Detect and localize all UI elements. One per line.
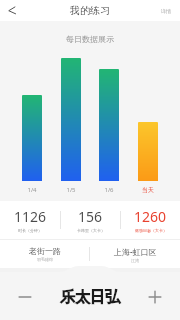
staticText: 我的练习: [70, 4, 110, 17]
staticText: 乐太日弘: [60, 288, 120, 307]
staticText: 卡路里（大卡）: [77, 228, 105, 233]
staticText: 上海-虹口区: [114, 246, 157, 257]
staticText: 1260: [134, 207, 167, 226]
staticText: 老街一路: [29, 246, 61, 256]
staticText: 1/6: [104, 186, 114, 194]
button[interactable]: Increase: [130, 274, 180, 320]
button[interactable]: 156: [61, 201, 120, 239]
staticText: 时长（分钟）: [18, 228, 42, 233]
button[interactable]: 1260: [121, 201, 180, 239]
staticText: 详情: [161, 8, 171, 14]
button[interactable]: 1/4: [22, 52, 42, 194]
staticText: 每日数据展示: [66, 34, 114, 44]
staticText: 156: [78, 207, 103, 226]
button[interactable]: 1/5: [61, 52, 81, 194]
button[interactable]: Decrease: [0, 274, 50, 320]
button[interactable]: 当天: [138, 52, 158, 194]
button[interactable]: 1/6: [99, 52, 119, 194]
button[interactable]: Back: [0, 0, 24, 21]
staticText: 1126: [14, 207, 47, 226]
button[interactable]: 详情: [158, 5, 174, 17]
button[interactable]: 乐太日弘: [50, 274, 130, 320]
staticText: 江湾: [131, 258, 139, 263]
staticText: 1/5: [66, 186, 76, 194]
staticText: 当天: [142, 186, 154, 194]
button[interactable]: 老街一路: [0, 240, 89, 268]
button[interactable]: 上海-虹口区: [90, 240, 180, 268]
staticText: 燃脂目标（大卡）: [135, 228, 167, 233]
staticText: 1/4: [27, 186, 37, 194]
button[interactable]: 1126: [0, 201, 60, 239]
staticText: 羽毛球馆: [37, 257, 53, 262]
